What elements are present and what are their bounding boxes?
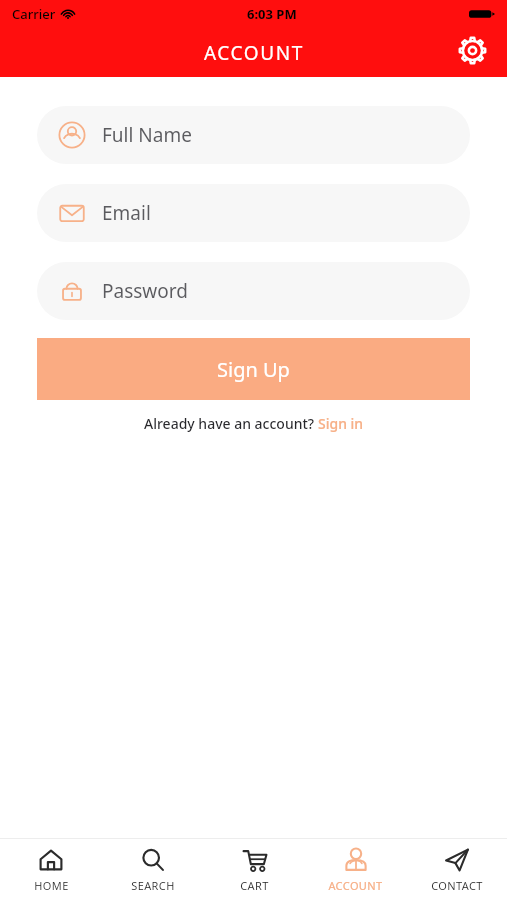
staticText: Full Name	[102, 122, 192, 148]
staticText: Sign Up	[217, 356, 290, 383]
staticText: Sign in	[318, 414, 364, 433]
button[interactable]: ACCOUNT	[305, 839, 406, 900]
button[interactable]: CART	[204, 839, 305, 900]
staticText: HOME	[34, 878, 69, 893]
staticText: Email	[102, 200, 151, 226]
button[interactable]: Password	[37, 262, 470, 320]
staticText: Carrier	[12, 5, 56, 23]
button[interactable]: Sign Up	[37, 338, 470, 400]
button[interactable]: Full Name	[37, 106, 470, 164]
button[interactable]: Settings	[455, 33, 489, 67]
button[interactable]: Email	[37, 184, 470, 242]
staticText: Already have an account?	[144, 414, 318, 433]
staticText: ACCOUNT	[328, 878, 383, 893]
staticText: ACCOUNT	[204, 40, 304, 66]
button[interactable]: SEARCH	[102, 839, 204, 900]
button[interactable]: CONTACT	[406, 839, 507, 900]
staticText: 6:03 PM	[247, 5, 297, 23]
staticText: CONTACT	[431, 878, 483, 893]
button[interactable]: HOME	[0, 839, 102, 900]
button[interactable]: Sign in	[318, 414, 364, 433]
staticText: SEARCH	[131, 878, 175, 893]
staticText: Password	[102, 278, 188, 304]
staticText: CART	[240, 878, 269, 893]
